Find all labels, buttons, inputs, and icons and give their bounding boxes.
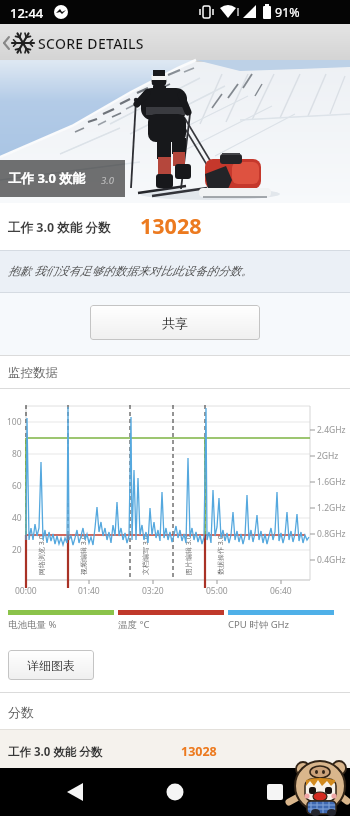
staticText: 电池电量 % xyxy=(8,618,57,631)
staticText: 工作 3.0 效能 xyxy=(8,169,86,187)
staticText: 13028 xyxy=(140,211,202,240)
staticText: 91% xyxy=(275,4,300,21)
staticText: 详细图表 xyxy=(27,658,75,673)
button[interactable]: 共享 xyxy=(90,305,260,340)
staticText: CPU 时钟 GHz xyxy=(228,618,290,631)
staticText: 工作 3.0 效能 分数 xyxy=(8,744,103,760)
button[interactable] xyxy=(0,768,116,816)
staticText: 13028 xyxy=(181,743,217,760)
staticText: 共享 xyxy=(162,315,188,331)
staticText: 抱歉 我们没有足够的数据来对比此设备的分数。 xyxy=(8,263,253,279)
staticText: 温度 °C xyxy=(118,618,150,631)
staticText: 分数 xyxy=(8,704,34,720)
staticText: 3.0 xyxy=(101,174,114,187)
staticText: 工作 3.0 效能 分数 xyxy=(8,219,111,236)
button[interactable]: 工作 3.0 效能 分数 xyxy=(0,730,350,768)
button[interactable] xyxy=(116,768,233,816)
button[interactable]: 详细图表 xyxy=(8,650,94,680)
button[interactable]: 工作 3.0 效能 xyxy=(0,62,350,203)
button[interactable] xyxy=(233,768,350,816)
staticText: SCORE DETAILS xyxy=(38,34,144,53)
staticText: 监控数据 xyxy=(8,365,58,381)
staticText: 12:44 xyxy=(10,4,44,22)
button[interactable]: SCORE DETAILS xyxy=(0,24,350,62)
